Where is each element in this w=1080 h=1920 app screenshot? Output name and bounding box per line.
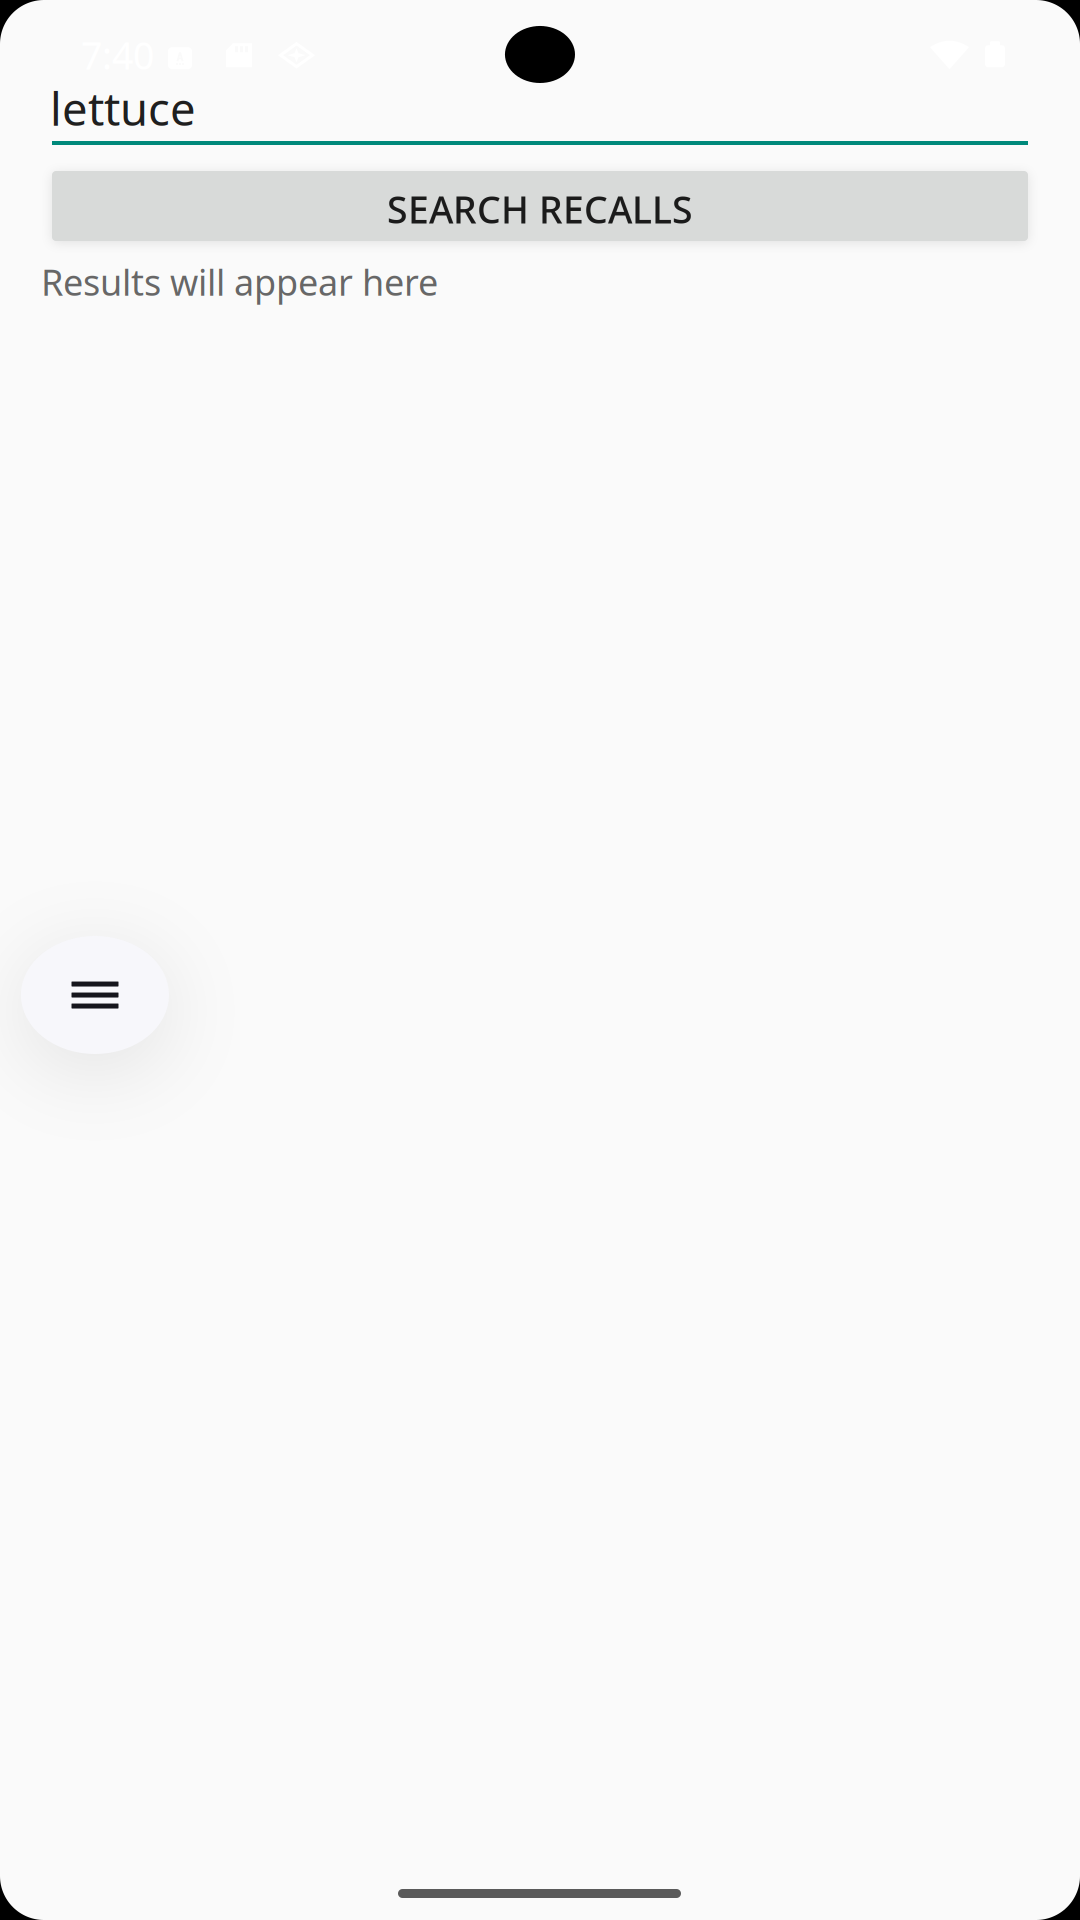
staticText: Results will appear here <box>41 258 438 306</box>
button[interactable]: lettuce <box>52 82 1028 145</box>
staticText: lettuce <box>50 78 196 138</box>
button[interactable]: SEARCH RECALLS <box>52 171 1028 241</box>
button[interactable]: Menu <box>21 936 169 1054</box>
staticText: SEARCH RECALLS <box>387 184 693 234</box>
